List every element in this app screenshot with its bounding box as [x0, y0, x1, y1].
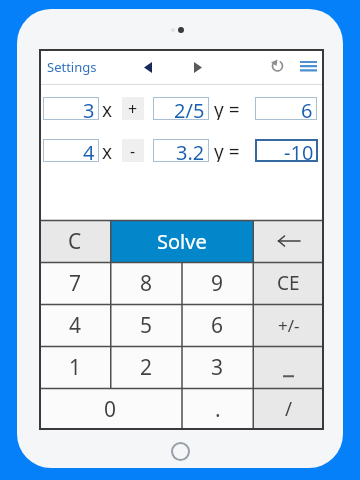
- button[interactable]: .: [182, 388, 253, 430]
- button[interactable]: 3.2: [153, 139, 209, 162]
- staticText: -: [130, 140, 136, 162]
- button[interactable]: 6: [182, 304, 253, 346]
- staticText: 0: [104, 395, 117, 424]
- staticText: C: [68, 227, 82, 256]
- button[interactable]: [253, 220, 324, 262]
- button[interactable]: 8: [111, 262, 182, 304]
- staticText: 6: [301, 97, 313, 120]
- staticText: 4: [69, 311, 82, 340]
- button[interactable]: CE: [253, 262, 324, 304]
- button[interactable]: 3: [43, 97, 99, 120]
- staticText: 9: [211, 269, 224, 298]
- button[interactable]: 2: [111, 346, 182, 388]
- button[interactable]: /: [253, 388, 324, 430]
- staticText: 6: [211, 311, 224, 340]
- staticText: x: [102, 139, 113, 162]
- staticText: 2/5: [174, 97, 205, 120]
- staticText: 7: [69, 269, 82, 298]
- button[interactable]: C: [39, 220, 110, 262]
- button[interactable]: +: [122, 97, 144, 120]
- staticText: .: [215, 395, 221, 424]
- button[interactable]: Solve: [110, 220, 253, 262]
- button[interactable]: [189, 55, 207, 79]
- staticText: +: [128, 98, 138, 120]
- staticText: 2: [140, 353, 153, 382]
- staticText: y =: [214, 97, 240, 120]
- staticText: 3: [83, 97, 95, 120]
- staticText: +/-: [278, 314, 300, 337]
- staticText: 5: [140, 311, 153, 340]
- staticText: x: [102, 97, 113, 120]
- staticText: Settings: [47, 58, 97, 76]
- button[interactable]: +/-: [253, 304, 324, 346]
- button[interactable]: [171, 442, 190, 461]
- button[interactable]: 1: [39, 346, 111, 388]
- staticText: 1: [69, 353, 82, 382]
- staticText: 8: [140, 269, 153, 298]
- button[interactable]: 9: [182, 262, 253, 304]
- staticText: 3: [211, 353, 224, 382]
- staticText: Solve: [157, 228, 207, 255]
- button[interactable]: 2/5: [153, 97, 209, 120]
- staticText: CE: [277, 270, 300, 296]
- button[interactable]: 7: [39, 262, 111, 304]
- staticText: 3.2: [176, 139, 205, 162]
- button[interactable]: 3: [182, 346, 253, 388]
- button[interactable]: Settings: [43, 54, 113, 80]
- button[interactable]: -: [122, 139, 144, 162]
- button[interactable]: 4: [39, 304, 111, 346]
- button[interactable]: [297, 54, 319, 78]
- button[interactable]: [253, 346, 324, 388]
- button[interactable]: -10: [255, 139, 318, 162]
- staticText: /: [285, 396, 293, 422]
- staticText: -10: [284, 139, 314, 162]
- button[interactable]: [139, 55, 157, 79]
- button[interactable]: 6: [255, 97, 317, 120]
- button[interactable]: [267, 53, 287, 77]
- button[interactable]: 5: [111, 304, 182, 346]
- staticText: 4: [83, 139, 95, 162]
- staticText: y =: [214, 139, 240, 162]
- button[interactable]: 4: [43, 139, 99, 162]
- button[interactable]: 0: [39, 388, 182, 430]
